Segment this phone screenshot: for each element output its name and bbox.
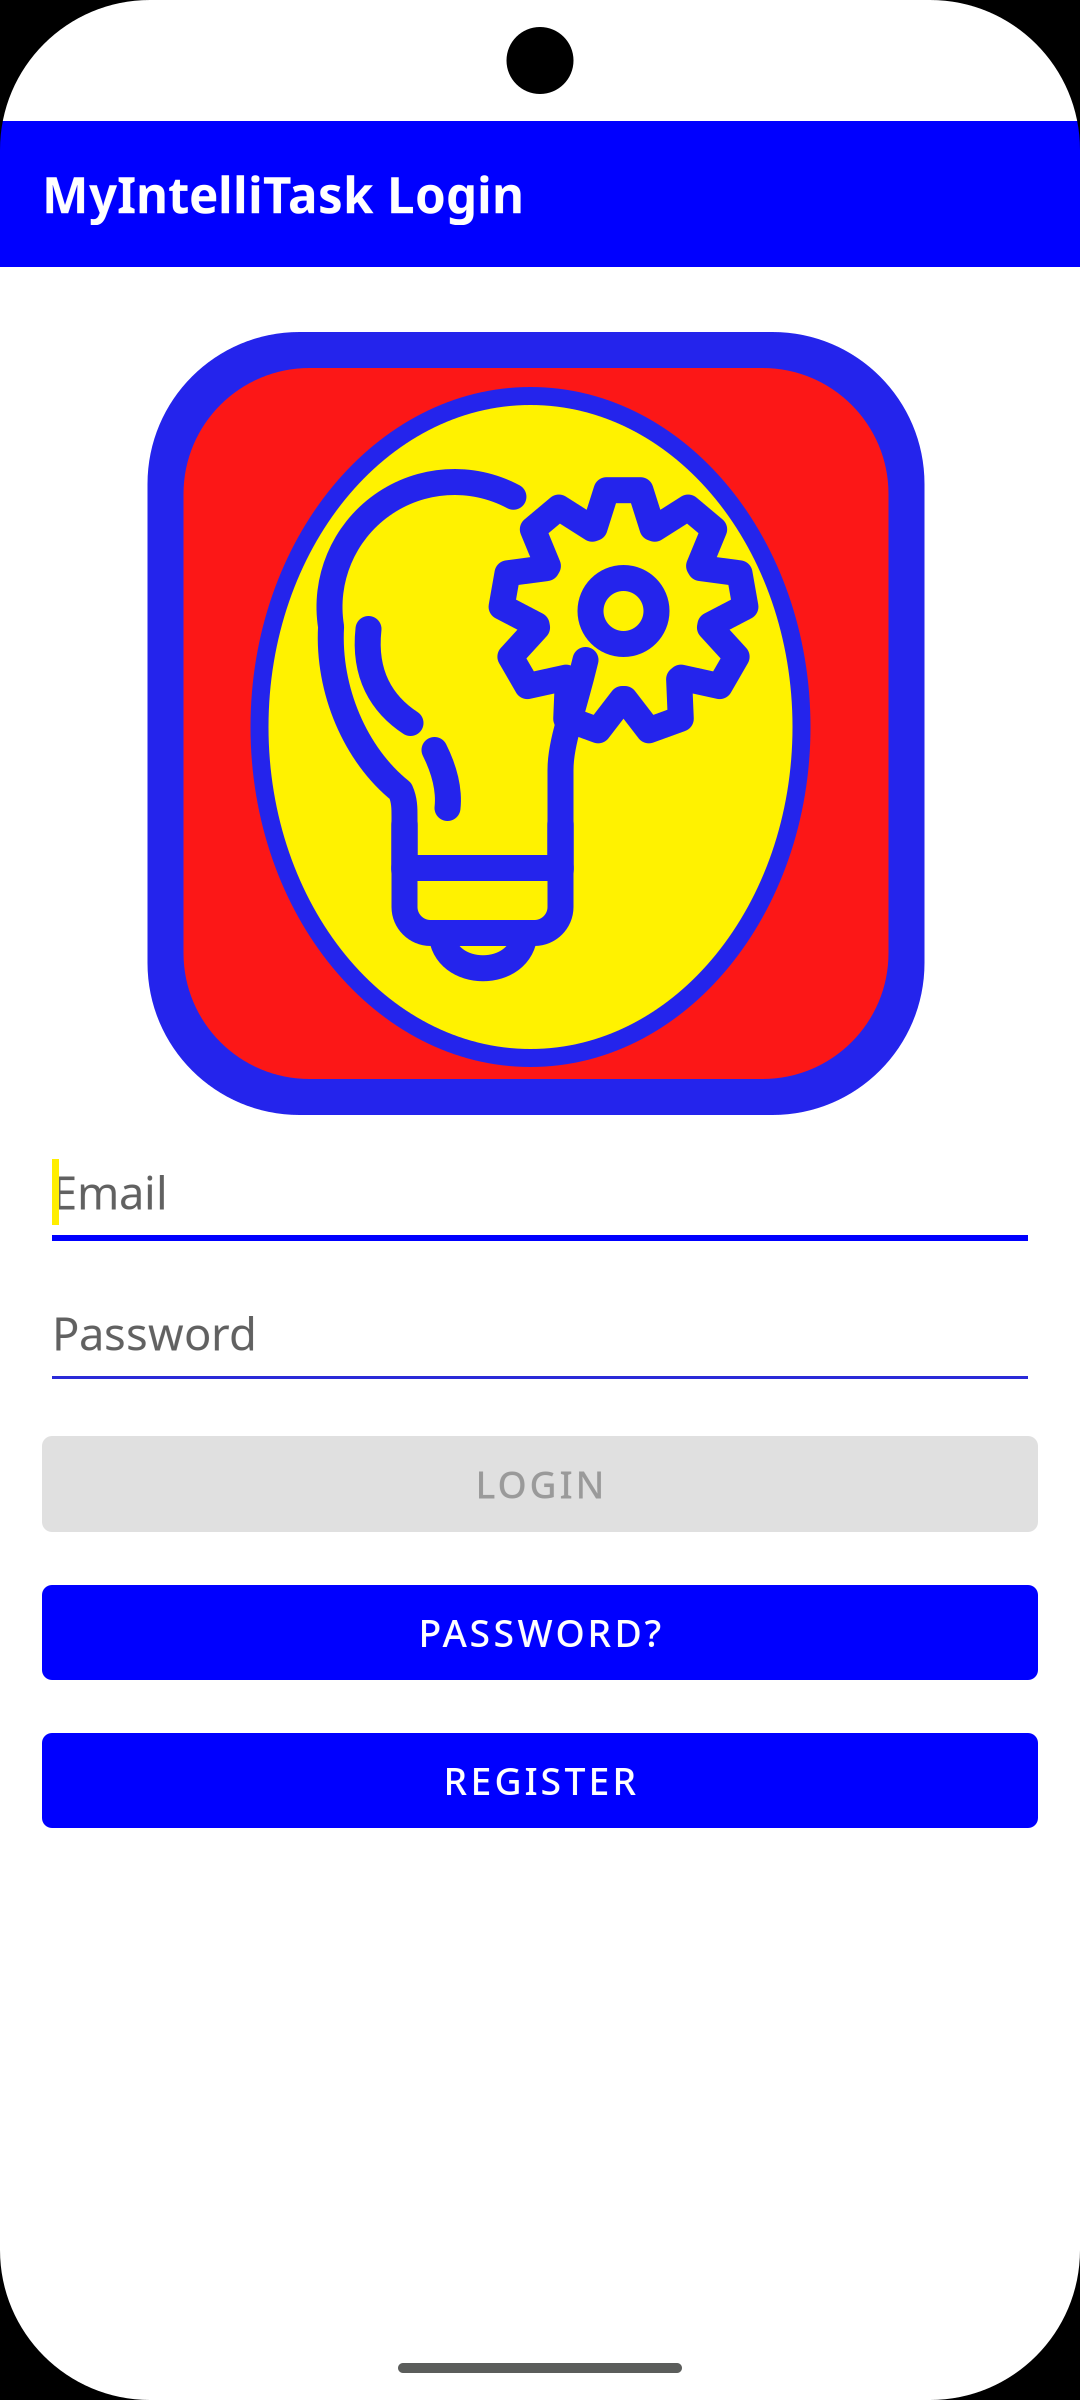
staticText: PASSWORD?: [418, 1608, 661, 1657]
staticText: Email: [52, 1162, 168, 1222]
staticText: Password: [52, 1303, 257, 1363]
button[interactable]: PASSWORD?: [42, 1585, 1038, 1680]
staticText: MyIntelliTask Login: [42, 161, 524, 227]
button[interactable]: REGISTER: [42, 1733, 1038, 1828]
staticText: LOGIN: [475, 1459, 604, 1509]
staticText: REGISTER: [443, 1756, 636, 1805]
button[interactable]: LOGIN: [42, 1436, 1038, 1532]
